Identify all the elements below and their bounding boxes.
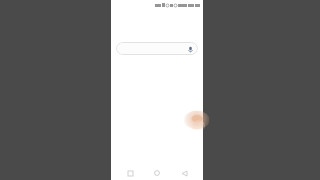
- button[interactable]: Voice search: [116, 42, 198, 55]
- button[interactable]: Home: [149, 166, 165, 180]
- button[interactable]: Back: [176, 166, 192, 180]
- button[interactable]: Recents: [122, 166, 138, 180]
- button[interactable]: Voice search: [186, 45, 194, 53]
